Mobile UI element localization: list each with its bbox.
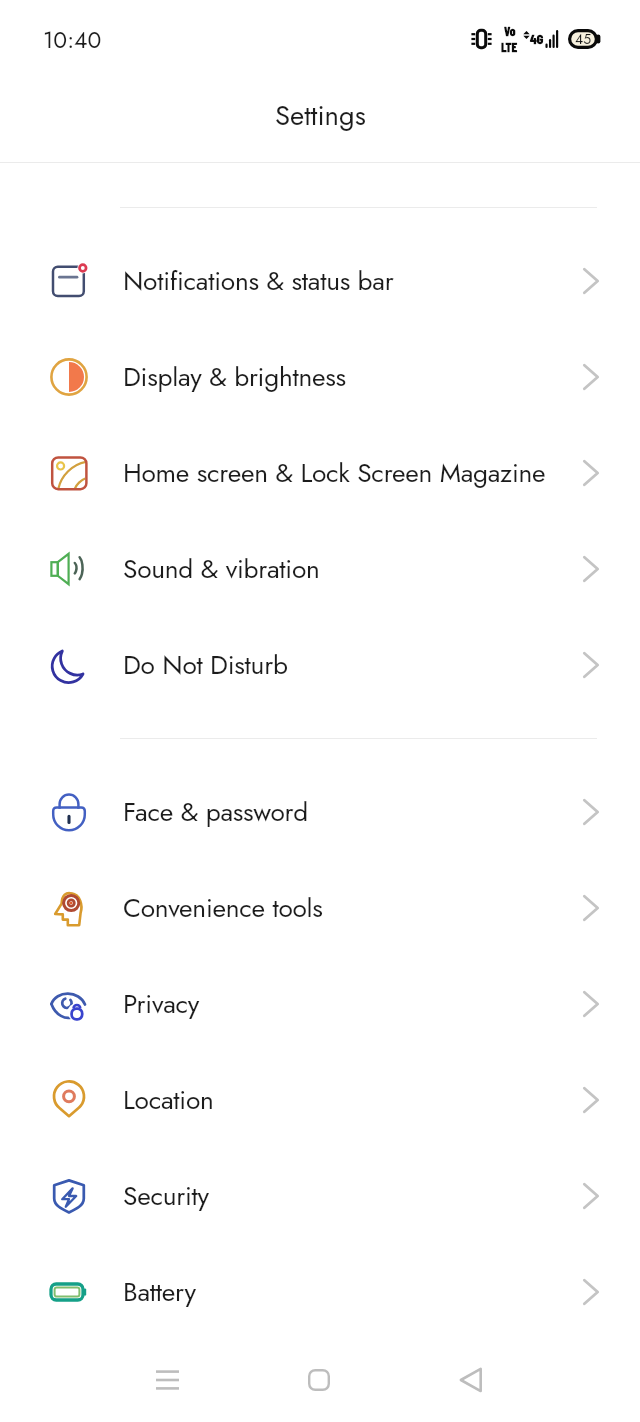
button[interactable]: Battery	[0, 1244, 640, 1340]
button[interactable]: Convenience tools	[0, 860, 640, 956]
staticText: Sound & vibration	[123, 550, 320, 588]
button[interactable]: Face & password	[0, 764, 640, 860]
staticText: Vo	[504, 23, 516, 39]
button[interactable]: Back	[395, 1340, 547, 1420]
staticText: Location	[123, 1081, 214, 1119]
staticText: Do Not Disturb	[123, 646, 288, 684]
staticText: Battery	[123, 1273, 196, 1311]
staticText: LTE	[501, 39, 518, 55]
button[interactable]: Security	[0, 1148, 640, 1244]
button[interactable]: Home	[243, 1340, 395, 1420]
staticText: Home screen & Lock Screen Magazine	[123, 454, 546, 492]
button[interactable]: Sound & vibration	[0, 521, 640, 617]
staticText: 10:40	[43, 23, 102, 56]
staticText: Security	[123, 1177, 209, 1215]
button[interactable]: Privacy	[0, 956, 640, 1052]
staticText: Privacy	[123, 985, 200, 1023]
button[interactable]: Location	[0, 1052, 640, 1148]
staticText: Notifications & status bar	[123, 262, 394, 300]
button[interactable]: Notifications & status bar	[0, 233, 640, 329]
staticText: Display & brightness	[123, 358, 346, 396]
staticText: 4G	[530, 30, 544, 47]
staticText: 45	[575, 29, 592, 49]
staticText: Convenience tools	[123, 889, 323, 927]
staticText: Face & password	[123, 793, 309, 831]
button[interactable]: Recent apps	[91, 1340, 243, 1420]
button[interactable]: Home screen & Lock Screen Magazine	[0, 425, 640, 521]
staticText: Settings	[275, 96, 366, 136]
button[interactable]: Display & brightness	[0, 329, 640, 425]
button[interactable]: Do Not Disturb	[0, 617, 640, 713]
